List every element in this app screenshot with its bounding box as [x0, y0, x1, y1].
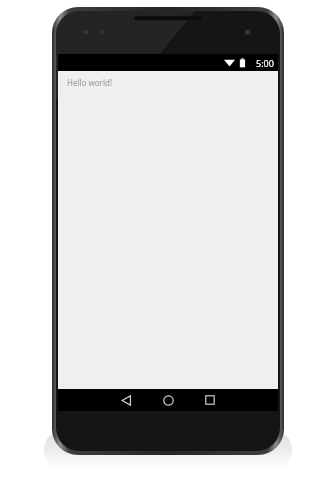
button[interactable]: Recent apps [198, 389, 222, 411]
staticText: Hello world! [67, 77, 113, 88]
button[interactable]: Back [114, 389, 138, 411]
staticText: 5:00 [256, 57, 274, 69]
button[interactable]: Home [156, 389, 180, 411]
